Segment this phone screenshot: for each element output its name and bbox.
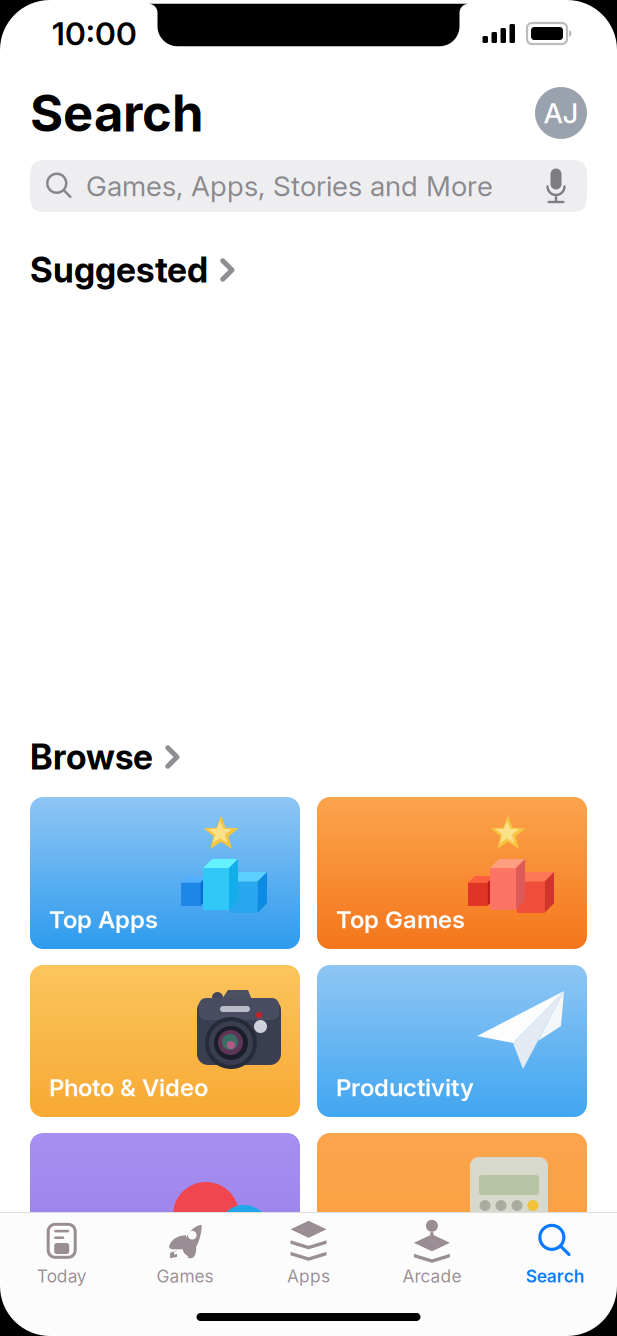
staticText: Games bbox=[157, 1266, 214, 1287]
staticText: Games, Apps, Stories and More bbox=[86, 169, 493, 203]
staticText: Apps bbox=[287, 1266, 330, 1287]
staticText: Top Games bbox=[336, 905, 465, 934]
staticText: AJ bbox=[543, 96, 578, 130]
button[interactable]: Utilities bbox=[317, 1133, 587, 1285]
button[interactable]: Games bbox=[123, 1219, 247, 1291]
button[interactable]: Top Apps bbox=[30, 797, 300, 949]
staticText: 10:00 bbox=[52, 14, 137, 53]
staticText: Productivity bbox=[336, 1073, 474, 1102]
staticText: Search bbox=[526, 1266, 585, 1287]
staticText: Suggested bbox=[30, 249, 208, 291]
button[interactable]: Account bbox=[535, 87, 587, 139]
staticText: Top Apps bbox=[49, 905, 158, 934]
button[interactable]: Today bbox=[0, 1219, 123, 1291]
staticText: Browse bbox=[30, 736, 153, 778]
button[interactable]: Search bbox=[494, 1219, 617, 1291]
button[interactable]: Arcade bbox=[370, 1219, 494, 1291]
staticText: Today bbox=[37, 1266, 87, 1287]
button[interactable]: Top Games bbox=[317, 797, 587, 949]
staticText: Utilities bbox=[336, 1241, 420, 1270]
button[interactable]: Browse bbox=[0, 737, 617, 777]
staticText: Health & Fitness bbox=[49, 1241, 233, 1270]
button[interactable]: Productivity bbox=[317, 965, 587, 1117]
button[interactable]: Apps bbox=[247, 1219, 370, 1291]
button[interactable]: Games, Apps, Stories and More bbox=[30, 160, 587, 212]
staticText: Photo & Video bbox=[49, 1073, 208, 1102]
staticText: Arcade bbox=[402, 1266, 461, 1287]
staticText: Search bbox=[30, 82, 204, 144]
button[interactable]: Health & Fitness bbox=[30, 1133, 300, 1285]
button[interactable]: Suggested bbox=[0, 250, 617, 290]
button[interactable]: Photo & Video bbox=[30, 965, 300, 1117]
